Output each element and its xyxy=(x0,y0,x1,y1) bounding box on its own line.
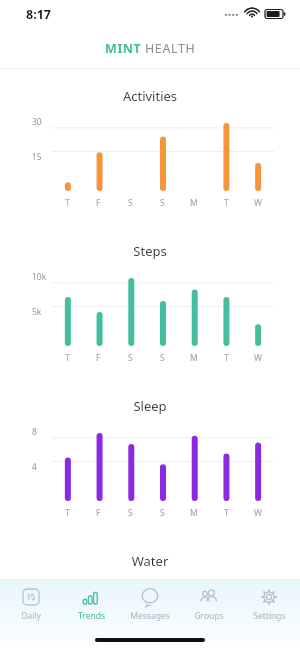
staticText: W xyxy=(254,507,262,519)
staticText: S xyxy=(160,197,165,209)
button[interactable]: Settings xyxy=(241,585,297,622)
staticText: M xyxy=(190,197,198,209)
button[interactable]: Water xyxy=(14,542,286,579)
staticText: 8 xyxy=(32,426,37,438)
button[interactable]: Trends xyxy=(63,585,119,622)
staticText: F xyxy=(96,352,101,364)
button[interactable]: Groups xyxy=(181,585,237,622)
staticText: Groups xyxy=(194,610,224,622)
button[interactable]: Activities xyxy=(14,77,286,213)
staticText: S xyxy=(128,507,133,519)
staticText: M xyxy=(190,352,198,364)
staticText: 4 xyxy=(32,461,37,473)
staticText: Sleep xyxy=(14,397,286,415)
staticText: 15 xyxy=(32,151,42,163)
staticText: Settings xyxy=(253,610,286,622)
staticText: S xyxy=(128,197,133,209)
staticText: 5k xyxy=(32,306,42,318)
staticText: S xyxy=(160,352,165,364)
staticText: MINT xyxy=(105,40,142,57)
staticText: T xyxy=(65,197,70,209)
staticText: Activities xyxy=(14,87,286,105)
staticText: W xyxy=(254,352,262,364)
staticText: T xyxy=(224,507,229,519)
staticText: HEALTH xyxy=(145,40,196,57)
staticText: 8:17 xyxy=(26,6,51,23)
staticText: S xyxy=(160,507,165,519)
staticText: 10k xyxy=(32,271,47,283)
staticText: Water xyxy=(14,552,286,570)
button[interactable]: Sleep xyxy=(14,387,286,523)
button[interactable]: Daily xyxy=(3,585,59,622)
staticText: T xyxy=(224,197,229,209)
staticText: T xyxy=(65,507,70,519)
staticText: S xyxy=(128,352,133,364)
staticText: T xyxy=(65,352,70,364)
staticText: Steps xyxy=(14,242,286,260)
staticText: 30 xyxy=(32,116,42,128)
staticText: F xyxy=(96,507,101,519)
staticText: F xyxy=(96,197,101,209)
button[interactable]: Steps xyxy=(14,232,286,368)
staticText: Daily xyxy=(21,610,41,622)
staticText: W xyxy=(254,197,262,209)
staticText: Messages xyxy=(130,610,170,622)
button[interactable]: Messages xyxy=(122,585,178,622)
staticText: M xyxy=(190,507,198,519)
staticText: Trends xyxy=(78,610,105,622)
staticText: T xyxy=(224,352,229,364)
